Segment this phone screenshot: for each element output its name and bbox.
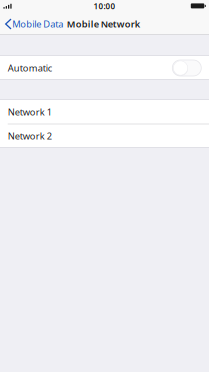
staticText: 10:00 — [93, 1, 115, 11]
staticText: Mobile Network — [67, 18, 140, 30]
staticText: Network 1 — [8, 106, 52, 118]
button[interactable]: Automatic — [0, 56, 209, 80]
button[interactable]: Network 2 — [0, 124, 209, 148]
staticText: Automatic — [8, 62, 52, 74]
button[interactable]: Network 1 — [0, 100, 209, 124]
button[interactable]: Mobile Data — [0, 13, 66, 35]
staticText: Mobile Data — [12, 18, 63, 30]
staticText: Network 2 — [8, 130, 52, 142]
